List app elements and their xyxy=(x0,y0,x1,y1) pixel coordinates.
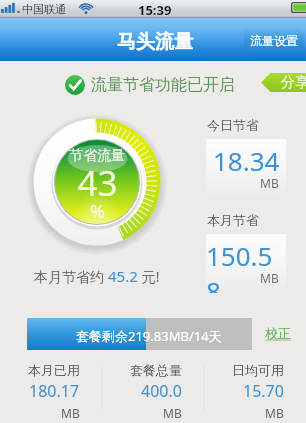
staticText: 套餐总量 xyxy=(130,362,182,378)
staticText: MB xyxy=(163,405,182,418)
staticText: 分享 xyxy=(281,74,306,92)
staticText: 本月节省 xyxy=(207,212,259,228)
staticText: 400.0 xyxy=(141,380,182,402)
button[interactable]: 套餐剩余219.83MB/14天 xyxy=(27,318,252,350)
staticText: 今日节省 xyxy=(207,117,259,133)
button[interactable]: 本月已用 xyxy=(0,362,102,418)
button[interactable]: 套餐总量 xyxy=(102,362,204,418)
staticText: 元! xyxy=(138,267,160,286)
staticText: 180.17 xyxy=(29,380,80,402)
staticText: 本月节省约 xyxy=(34,267,108,286)
staticText: 节省流量 xyxy=(69,147,125,165)
staticText: 15.70 xyxy=(243,380,284,402)
staticText: 马头流量 xyxy=(117,30,193,54)
button[interactable]: 日均可用 xyxy=(204,362,306,418)
button[interactable]: 分享 xyxy=(261,73,306,92)
staticText: 150.58 xyxy=(206,238,286,293)
staticText: 套餐剩余219.83MB/14天 xyxy=(76,327,222,345)
button[interactable]: 校正 xyxy=(265,325,291,341)
staticText: MB xyxy=(260,270,279,286)
staticText: 流量节省功能已开启 xyxy=(91,75,235,95)
staticText: % xyxy=(90,199,105,224)
staticText: 45.2 xyxy=(108,266,138,286)
staticText: 日均可用 xyxy=(232,362,284,378)
button[interactable]: 18.34 xyxy=(206,139,286,194)
staticText: 18.34 xyxy=(213,143,280,178)
staticText: 15:39 xyxy=(138,1,172,19)
button[interactable]: 150.58 xyxy=(206,234,286,289)
staticText: MB xyxy=(265,405,284,418)
staticText: MB xyxy=(260,175,279,191)
staticText: 中国联通 xyxy=(22,2,66,16)
staticText: 校正 xyxy=(265,325,291,341)
staticText: 本月已用 xyxy=(28,362,80,378)
staticText: 流量设置 xyxy=(250,33,298,48)
staticText: 43 xyxy=(77,159,118,207)
staticText: MB xyxy=(61,405,80,418)
button[interactable]: 流量设置 xyxy=(244,29,303,52)
